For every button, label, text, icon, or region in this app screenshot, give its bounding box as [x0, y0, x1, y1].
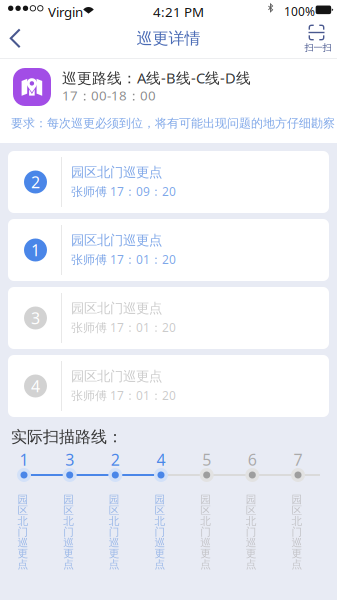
- staticText: 4: [31, 375, 40, 397]
- staticText: 5: [202, 449, 211, 470]
- staticText: 区: [200, 504, 211, 517]
- staticText: 扫一扫: [304, 42, 331, 53]
- staticText: 巡: [154, 536, 165, 549]
- staticText: 北: [109, 515, 120, 528]
- staticText: 2: [31, 171, 40, 193]
- staticText: 更: [200, 547, 211, 560]
- staticText: 2: [111, 449, 120, 470]
- staticText: 门: [17, 525, 28, 538]
- staticText: 园: [109, 493, 120, 506]
- staticText: 张师傅 17：01：20: [71, 387, 176, 403]
- staticText: 17：00-18：00: [62, 86, 156, 104]
- staticText: 园: [246, 493, 257, 506]
- staticText: 巡: [200, 536, 211, 549]
- staticText: 园区北门巡更点: [71, 300, 162, 316]
- staticText: 巡更详情: [136, 28, 200, 48]
- staticText: 巡更路线：A线-B线-C线-D线: [62, 68, 251, 87]
- staticText: 1: [19, 449, 28, 470]
- staticText: 园区北门巡更点: [71, 232, 162, 248]
- staticText: 更: [63, 547, 74, 560]
- staticText: 区: [154, 504, 165, 517]
- staticText: 点: [63, 558, 74, 571]
- staticText: 100%: [284, 3, 315, 19]
- staticText: Virgin: [48, 3, 83, 21]
- staticText: 区: [246, 504, 257, 517]
- staticText: 实际扫描路线：: [11, 427, 123, 447]
- staticText: 张师傅 17：01：20: [71, 251, 176, 267]
- staticText: 3: [65, 449, 74, 470]
- staticText: 区: [291, 504, 302, 517]
- staticText: 更: [109, 547, 120, 560]
- staticText: 3: [31, 307, 40, 329]
- staticText: 巡: [17, 536, 28, 549]
- staticText: 巡: [291, 536, 302, 549]
- staticText: 区: [17, 504, 28, 517]
- staticText: 6: [248, 449, 257, 470]
- staticText: 北: [63, 515, 74, 528]
- staticText: 北: [154, 515, 165, 528]
- staticText: 巡: [63, 536, 74, 549]
- staticText: 更: [246, 547, 257, 560]
- staticText: 更: [17, 547, 28, 560]
- staticText: 园: [154, 493, 165, 506]
- staticText: 点: [291, 558, 302, 571]
- staticText: 门: [246, 525, 257, 538]
- staticText: 点: [17, 558, 28, 571]
- staticText: 园: [17, 493, 28, 506]
- staticText: 园区北门巡更点: [71, 164, 162, 180]
- staticText: 园: [200, 493, 211, 506]
- staticText: 园: [291, 493, 302, 506]
- staticText: 点: [154, 558, 165, 571]
- button[interactable]: 4: [8, 355, 329, 417]
- staticText: 北: [17, 515, 28, 528]
- staticText: 7: [293, 449, 302, 470]
- staticText: 更: [154, 547, 165, 560]
- staticText: 园: [63, 493, 74, 506]
- staticText: 张师傅 17：09：20: [71, 183, 176, 199]
- staticText: 北: [200, 515, 211, 528]
- staticText: 4:21 PM: [153, 3, 204, 21]
- staticText: 更: [291, 547, 302, 560]
- staticText: 巡: [109, 536, 120, 549]
- staticText: 要求：每次巡更必须到位，将有可能出现问题的地方仔细勘察！: [11, 116, 337, 131]
- staticText: 园区北门巡更点: [71, 368, 162, 384]
- staticText: 区: [63, 504, 74, 517]
- button[interactable]: 2: [8, 151, 329, 213]
- button[interactable]: 返回: [0, 21, 42, 58]
- button[interactable]: 3: [8, 287, 329, 349]
- staticText: 门: [291, 525, 302, 538]
- staticText: 门: [109, 525, 120, 538]
- staticText: 张师傅 17：01：20: [71, 319, 176, 335]
- staticText: 点: [109, 558, 120, 571]
- staticText: 4: [156, 449, 165, 470]
- staticText: 北: [291, 515, 302, 528]
- button[interactable]: 1: [8, 219, 329, 281]
- button[interactable]: 扫一扫: [298, 22, 336, 56]
- staticText: 门: [200, 525, 211, 538]
- staticText: 点: [200, 558, 211, 571]
- staticText: 门: [63, 525, 74, 538]
- staticText: 巡: [246, 536, 257, 549]
- staticText: 北: [246, 515, 257, 528]
- staticText: 1: [31, 239, 40, 261]
- staticText: 点: [246, 558, 257, 571]
- staticText: 区: [109, 504, 120, 517]
- staticText: 门: [154, 525, 165, 538]
